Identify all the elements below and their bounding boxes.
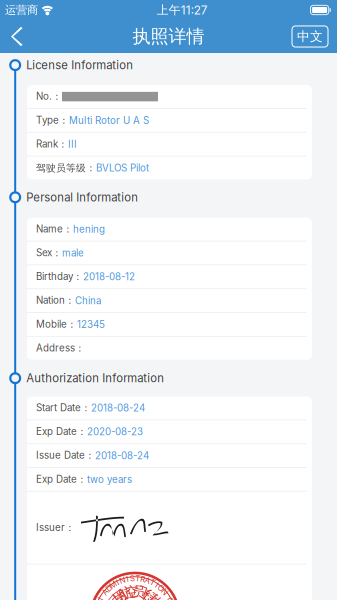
staticText: I (116, 577, 118, 587)
staticText: T (135, 573, 140, 583)
staticText: A (145, 575, 151, 585)
staticText: 2018-08-24 (95, 450, 149, 461)
staticText: 运营商 (5, 3, 38, 17)
staticText: 2018-08-12 (83, 271, 135, 283)
staticText: 驾驶员等级： (36, 162, 96, 174)
staticText: O (167, 596, 173, 600)
staticText: 上午11:27 (157, 3, 208, 17)
staticText: 民 (108, 592, 122, 600)
staticText: I (156, 580, 158, 590)
staticText: 执照详情 (132, 25, 204, 48)
staticText: N (119, 575, 125, 585)
staticText: 2018-08-24 (91, 402, 145, 414)
staticText: China (75, 295, 101, 306)
staticText: III (68, 138, 77, 150)
staticText: Address： (36, 342, 85, 354)
staticText: Issuer： (36, 521, 75, 534)
staticText: O (158, 583, 164, 593)
staticText: two years (87, 473, 132, 485)
staticText: Birthday： (36, 271, 83, 283)
staticText: S (130, 573, 135, 583)
staticText: Exp Date： (36, 426, 87, 438)
staticText: BVLOS Pilot (96, 162, 149, 174)
staticText: T (150, 577, 155, 587)
staticText: R (140, 574, 145, 584)
staticText: 空 (125, 583, 139, 600)
staticText: License Information (26, 58, 133, 72)
staticText: D (106, 583, 112, 593)
staticText: Rank： (36, 138, 68, 150)
staticText: male (62, 247, 84, 259)
staticText: Exp Date： (36, 473, 87, 485)
staticText: 中文 (297, 28, 323, 44)
staticText: No.： (36, 90, 62, 103)
staticText: 12345 (77, 318, 105, 330)
staticText: Sex： (36, 247, 62, 259)
staticText: Type： (36, 114, 69, 126)
staticText: Authorization Information (26, 371, 164, 385)
staticText: Mobile： (36, 318, 77, 330)
staticText: N (162, 587, 168, 597)
staticText: Personal Information (26, 190, 138, 204)
staticText: N (97, 596, 103, 600)
staticText: Name： (36, 223, 73, 235)
button[interactable]: 中文 (292, 26, 337, 47)
staticText: 员 (131, 583, 145, 600)
button[interactable]: Back (0, 21, 32, 52)
staticText: 执 (148, 592, 162, 600)
staticText: Nation： (36, 294, 75, 307)
staticText: 2020-08-23 (87, 426, 143, 438)
staticText: Multi Rotor U A S (69, 114, 149, 126)
staticText: M (110, 580, 117, 590)
staticText: 用 (113, 588, 127, 600)
staticText: I (126, 574, 128, 584)
staticText: 行 (143, 588, 157, 600)
staticText: 飞 (138, 585, 152, 600)
staticText: Issue Date： (36, 449, 95, 462)
staticText (101, 591, 103, 600)
staticText (167, 591, 169, 600)
staticText: 航 (118, 585, 132, 600)
staticText: Start Date： (36, 402, 91, 414)
staticText: A (102, 587, 108, 597)
staticText: hening (73, 223, 105, 235)
